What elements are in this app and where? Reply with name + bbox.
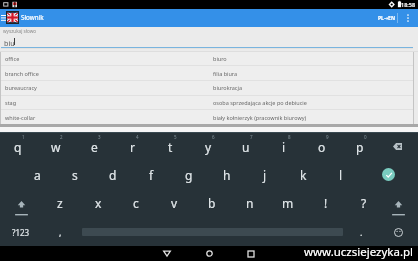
button[interactable]: Recent apps	[230, 246, 272, 261]
staticText: filia biura	[213, 70, 238, 77]
staticText: j	[263, 167, 267, 183]
button[interactable]: s	[56, 161, 94, 188]
button[interactable]: f	[132, 161, 170, 188]
button[interactable]: y	[189, 133, 227, 160]
staticText: e	[91, 139, 98, 155]
button[interactable]: Backspace	[378, 133, 416, 160]
button[interactable]: v	[155, 189, 193, 216]
button[interactable]: i	[265, 133, 303, 160]
staticText: c	[133, 195, 139, 211]
button[interactable]: Emoji	[380, 219, 416, 245]
button[interactable]: ?	[345, 189, 383, 216]
button[interactable]: Open navigation drawer	[0, 9, 6, 27]
staticText: biały kołnierzyk (pracownik biurowy)	[213, 114, 307, 121]
staticText: a	[34, 167, 41, 183]
staticText: 8	[288, 134, 291, 140]
button[interactable]: h	[208, 161, 246, 188]
button[interactable]: d	[94, 161, 132, 188]
staticText: p	[356, 139, 364, 155]
button[interactable]: Back	[146, 246, 188, 261]
button[interactable]: k	[284, 161, 322, 188]
button[interactable]: Space	[80, 219, 345, 245]
staticText: u	[242, 139, 250, 155]
button[interactable]: PL→EN	[375, 9, 397, 27]
button[interactable]: ,	[42, 219, 78, 245]
button[interactable]: r	[113, 133, 151, 160]
staticText: 9	[326, 134, 329, 140]
staticText: 18:58	[401, 1, 416, 8]
button[interactable]: stag	[1, 95, 414, 109]
staticText: q	[14, 139, 22, 155]
staticText: l	[339, 167, 343, 183]
button[interactable]: !	[307, 189, 345, 216]
staticText: k	[300, 167, 307, 183]
button[interactable]: j	[246, 161, 284, 188]
staticText: w	[51, 139, 61, 155]
button[interactable]: Enter	[375, 162, 401, 187]
staticText: wyszukaj słowo	[3, 28, 37, 34]
staticText: biurokracja	[213, 84, 243, 91]
button[interactable]: white-collar	[1, 110, 414, 125]
staticText: v	[171, 195, 178, 211]
button[interactable]: More options	[399, 9, 417, 27]
button[interactable]: b	[193, 189, 231, 216]
button[interactable]: Source language English	[6, 11, 19, 24]
button[interactable]: Home	[188, 246, 230, 261]
button[interactable]: ?123	[2, 219, 40, 245]
staticText: biu	[4, 38, 15, 48]
staticText: x	[95, 195, 102, 211]
button[interactable]: m	[269, 189, 307, 216]
button[interactable]: o	[303, 133, 341, 160]
staticText: stag	[5, 99, 17, 106]
button[interactable]: Shift	[380, 189, 416, 216]
button[interactable]: z	[41, 189, 79, 216]
staticText: o	[318, 139, 326, 155]
staticText: white-collar	[5, 114, 36, 121]
button[interactable]: c	[117, 189, 155, 216]
staticText: 3	[98, 134, 101, 140]
staticText: www.uczsiejezyka.pl	[304, 244, 414, 259]
staticText: biuro	[213, 55, 227, 62]
staticText: Słownik	[21, 13, 44, 22]
button[interactable]: bureaucracy	[1, 80, 414, 94]
staticText: h	[223, 167, 231, 183]
button[interactable]: branch office	[1, 66, 414, 80]
button[interactable]: q	[0, 133, 37, 160]
staticText: t	[168, 139, 173, 155]
staticText: .	[360, 226, 363, 238]
staticText: 1	[22, 134, 25, 140]
button[interactable]: w	[37, 133, 75, 160]
staticText: 5	[174, 134, 177, 140]
button[interactable]: office	[1, 51, 414, 65]
staticText: i	[282, 139, 286, 155]
button[interactable]: l	[322, 161, 360, 188]
staticText: 6	[212, 134, 215, 140]
button[interactable]: x	[79, 189, 117, 216]
button[interactable]: a	[18, 161, 56, 188]
button[interactable]: p	[341, 133, 379, 160]
staticText: b	[208, 195, 216, 211]
staticText: 2	[60, 134, 63, 140]
staticText: s	[72, 167, 78, 183]
button[interactable]: g	[170, 161, 208, 188]
button[interactable]: u	[227, 133, 265, 160]
staticText: z	[57, 195, 63, 211]
button[interactable]: .	[345, 219, 377, 245]
staticText: y	[205, 139, 212, 155]
staticText: 7	[250, 134, 253, 140]
button[interactable]: Shift	[2, 189, 40, 216]
staticText: ?123	[12, 227, 30, 238]
staticText: r	[130, 139, 135, 155]
staticText: 0	[364, 134, 367, 140]
staticText: branch office	[5, 70, 39, 77]
button[interactable]: n	[231, 189, 269, 216]
staticText: f	[149, 167, 154, 183]
staticText: osoba sprzedająca akcje po debiucie	[213, 99, 307, 106]
staticText: g	[185, 167, 193, 183]
staticText: !	[324, 195, 328, 211]
staticText: PL→EN	[378, 15, 395, 22]
button[interactable]: t	[151, 133, 189, 160]
staticText: d	[109, 167, 117, 183]
staticText: m	[282, 195, 294, 211]
button[interactable]: e	[75, 133, 113, 160]
